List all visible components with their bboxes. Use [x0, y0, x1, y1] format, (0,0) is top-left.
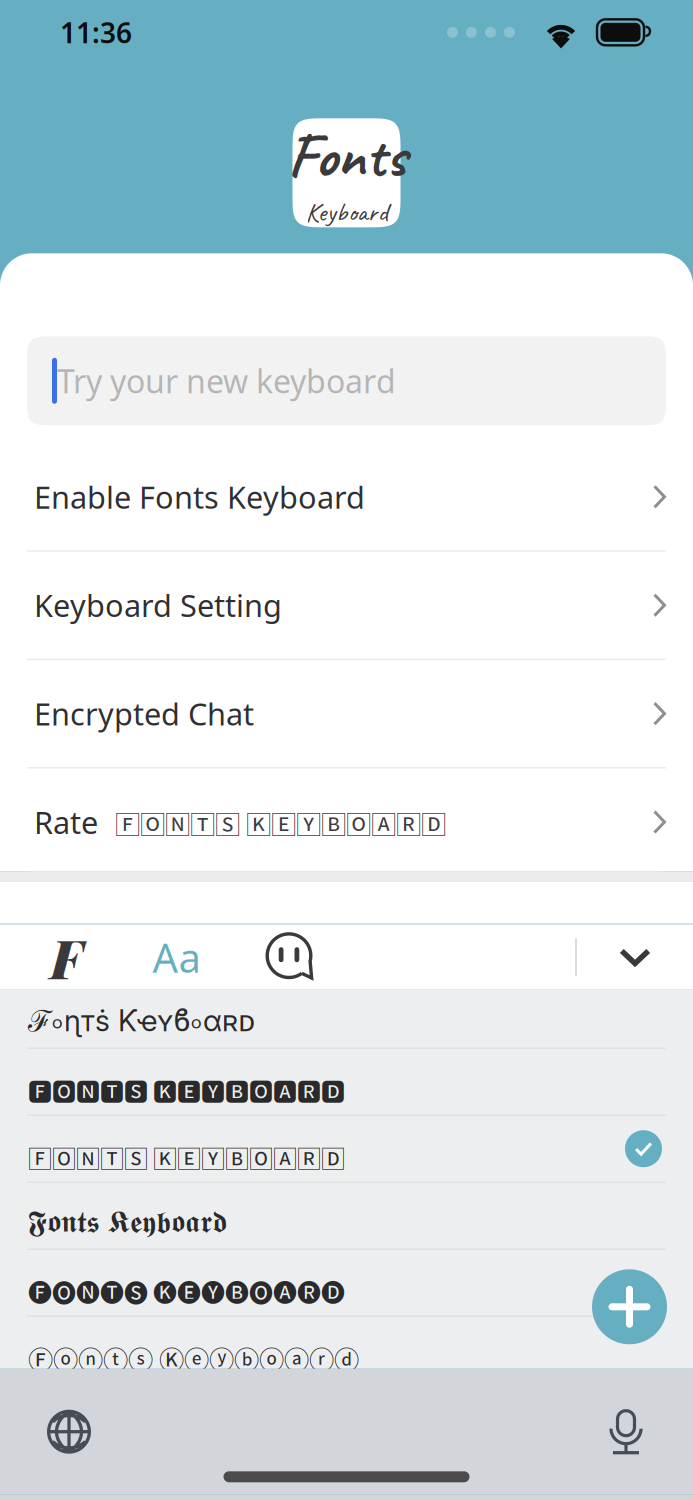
staticText: 🄵🄾🄽🅃🅂 🄺🄴🅈🄱🄾🄰🅁🄳	[28, 1140, 345, 1175]
button[interactable]: Keyboard Setting	[0, 552, 693, 659]
button[interactable]: Fonts	[20, 925, 112, 990]
button[interactable]: Next keyboard	[34, 1397, 104, 1467]
staticText: ℱ৹ɳᴛṡ Ƙҽʏϐ৹αʀᴅ	[28, 1000, 255, 1044]
button[interactable]: Rate	[0, 768, 693, 875]
staticText: Keyboard	[305, 195, 387, 229]
button[interactable]: 🄵🄾🄽🅃🅂 🄺🄴🅈🄱🄾🄰🅁🄳	[0, 1116, 693, 1181]
button[interactable]: 𝕱𝖔𝖓𝖙𝖘 𝕶𝖊𝖞𝖇𝖔𝖆𝖗𝖉	[0, 1183, 693, 1248]
staticText: Aa	[152, 931, 200, 984]
button[interactable]: Hide keyboard	[577, 925, 693, 990]
button[interactable]: ℱ৹ɳᴛṡ Ƙҽʏϐ৹αʀᴅ	[0, 982, 693, 1047]
button[interactable]: Encrypted Chat	[0, 660, 693, 767]
button[interactable]: Ⓕⓞⓝⓣⓢ Ⓚⓔⓨⓑⓞⓐⓡⓓ	[0, 1317, 693, 1382]
staticText: 𝕱𝖔𝖓𝖙𝖘 𝕶𝖊𝖞𝖇𝖔𝖆𝖗𝖉	[28, 1208, 227, 1239]
staticText: Keyboard Setting	[34, 585, 282, 625]
staticText: F	[50, 922, 82, 993]
button[interactable]: 🅕🅞🅝🅣🅢 🅚🅔🅨🅑🅞🅐🅡🅓	[0, 1250, 693, 1315]
button[interactable]: Add font	[592, 1269, 667, 1344]
staticText: Ⓕⓞⓝⓣⓢ Ⓚⓔⓨⓑⓞⓐⓡⓓ	[28, 1340, 359, 1377]
staticText: Try your new keyboard	[57, 360, 396, 402]
staticText: 🅕🅞🅝🅣🅢 🅚🅔🅨🅑🅞🅐🅡🅓	[28, 1274, 345, 1309]
staticText: 11:36	[60, 14, 132, 51]
staticText: Rate	[34, 802, 98, 842]
staticText: Fonts	[287, 117, 405, 194]
staticText: 🄵🄾🄽🅃🅂 🄺🄴🅈🄱🄾🄰🅁🄳	[115, 804, 446, 841]
staticText: Encrypted Chat	[34, 693, 254, 734]
button[interactable]: 🅵🅾🅽🆃🆂 🅺🅴🆈🅱🅾🅰🆁🅳	[0, 1049, 693, 1114]
staticText: 🅵🅾🅽🆃🆂 🅺🅴🆈🅱🅾🅰🆁🅳	[28, 1073, 345, 1108]
button[interactable]: Text styles	[112, 925, 241, 990]
button[interactable]: Dictation	[591, 1397, 661, 1467]
button[interactable]: Enable Fonts Keyboard	[0, 443, 693, 550]
button[interactable]: Emoji	[241, 925, 339, 990]
staticText: Enable Fonts Keyboard	[34, 476, 365, 517]
